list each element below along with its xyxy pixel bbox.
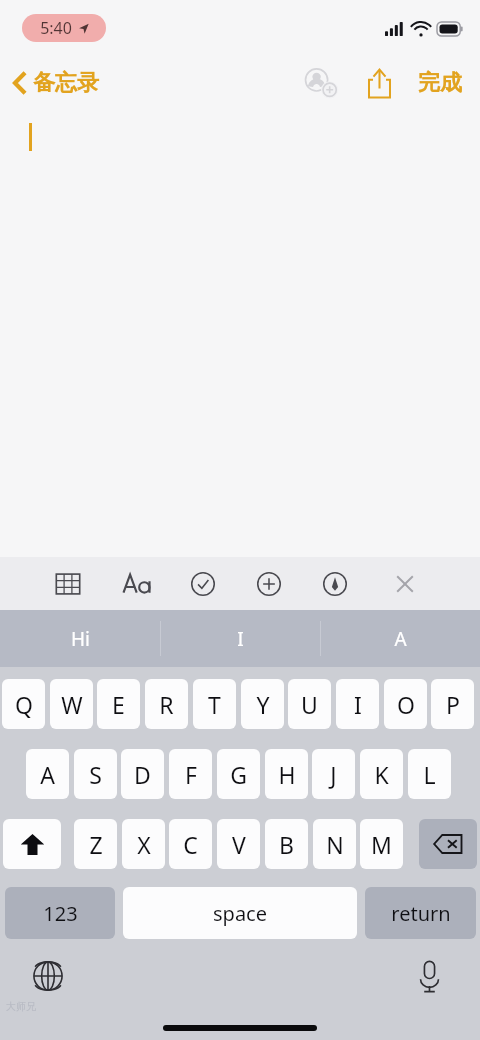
staticText: return <box>391 900 451 927</box>
button[interactable]: B <box>265 819 308 869</box>
button[interactable]: Markup <box>315 561 355 607</box>
staticText: space <box>213 900 267 927</box>
button[interactable]: A <box>26 749 69 799</box>
button[interactable]: Delete <box>419 819 477 869</box>
staticText: H <box>278 759 296 790</box>
button[interactable]: Q <box>2 679 45 729</box>
staticText: 完成 <box>418 69 462 97</box>
staticText: 备忘录 <box>33 69 99 97</box>
button[interactable]: W <box>50 679 93 729</box>
button[interactable]: Hi <box>0 610 160 667</box>
button[interactable]: Checklist <box>183 561 223 607</box>
button[interactable]: T <box>193 679 236 729</box>
button[interactable]: C <box>169 819 212 869</box>
staticText: M <box>371 829 392 860</box>
staticText: P <box>446 689 460 720</box>
button[interactable]: J <box>312 749 355 799</box>
button[interactable]: Z <box>74 819 117 869</box>
staticText: V <box>232 829 246 860</box>
button[interactable]: H <box>265 749 308 799</box>
staticText: Hi <box>71 626 90 652</box>
button[interactable]: S <box>74 749 117 799</box>
staticText: N <box>326 829 344 860</box>
button[interactable]: K <box>360 749 403 799</box>
button[interactable]: L <box>408 749 451 799</box>
button[interactable]: G <box>217 749 260 799</box>
staticText: R <box>159 689 174 720</box>
button[interactable]: Dictation <box>406 953 452 999</box>
staticText: D <box>134 759 151 790</box>
staticText: A <box>40 759 55 790</box>
staticText: F <box>185 759 197 790</box>
button[interactable]: P <box>431 679 474 729</box>
button[interactable]: E <box>97 679 140 729</box>
button[interactable]: Shift <box>3 819 61 869</box>
staticText: L <box>423 759 436 790</box>
staticText: K <box>374 759 389 790</box>
staticText: S <box>89 759 102 790</box>
staticText: J <box>330 759 337 790</box>
staticText: B <box>279 829 294 860</box>
staticText: E <box>112 689 125 720</box>
staticText: G <box>230 759 247 790</box>
button[interactable]: Add people <box>298 60 344 106</box>
button[interactable]: Share <box>356 60 402 106</box>
button[interactable]: R <box>145 679 188 729</box>
button[interactable]: F <box>169 749 212 799</box>
button[interactable]: 完成 <box>412 61 468 105</box>
staticText: I <box>237 626 244 652</box>
staticText: 123 <box>43 900 78 927</box>
button[interactable]: O <box>384 679 427 729</box>
staticText: A <box>394 626 407 652</box>
staticText: Q <box>15 689 33 720</box>
button[interactable]: Y <box>241 679 284 729</box>
button[interactable]: Text format <box>117 561 157 607</box>
button[interactable]: X <box>122 819 165 869</box>
staticText: Z <box>89 829 103 860</box>
staticText: 大师兄 <box>6 1000 36 1013</box>
staticText: X <box>137 829 151 860</box>
button[interactable]: 备忘录 <box>8 64 104 102</box>
button[interactable]: Next keyboard <box>25 953 71 999</box>
staticText: I <box>354 689 362 720</box>
button[interactable]: Time 5:40, recording <box>22 14 106 42</box>
button[interactable]: space <box>123 887 357 939</box>
button[interactable]: Hide keyboard <box>385 561 425 607</box>
button[interactable]: A <box>321 610 480 667</box>
button[interactable]: D <box>121 749 164 799</box>
button[interactable]: return <box>365 887 476 939</box>
button[interactable]: M <box>360 819 403 869</box>
staticText: W <box>61 689 83 720</box>
staticText: Y <box>256 689 270 720</box>
staticText: T <box>208 689 221 720</box>
button[interactable]: I <box>161 610 320 667</box>
button[interactable]: V <box>217 819 260 869</box>
staticText: U <box>301 689 318 720</box>
button[interactable]: Table <box>48 561 88 607</box>
button[interactable]: U <box>288 679 331 729</box>
button[interactable]: I <box>336 679 379 729</box>
button[interactable]: 123 <box>5 887 115 939</box>
staticText: O <box>397 689 415 720</box>
button[interactable]: N <box>313 819 356 869</box>
staticText: C <box>183 829 198 860</box>
staticText: 5:40 <box>40 17 72 39</box>
button[interactable]: Add attachment <box>249 561 289 607</box>
